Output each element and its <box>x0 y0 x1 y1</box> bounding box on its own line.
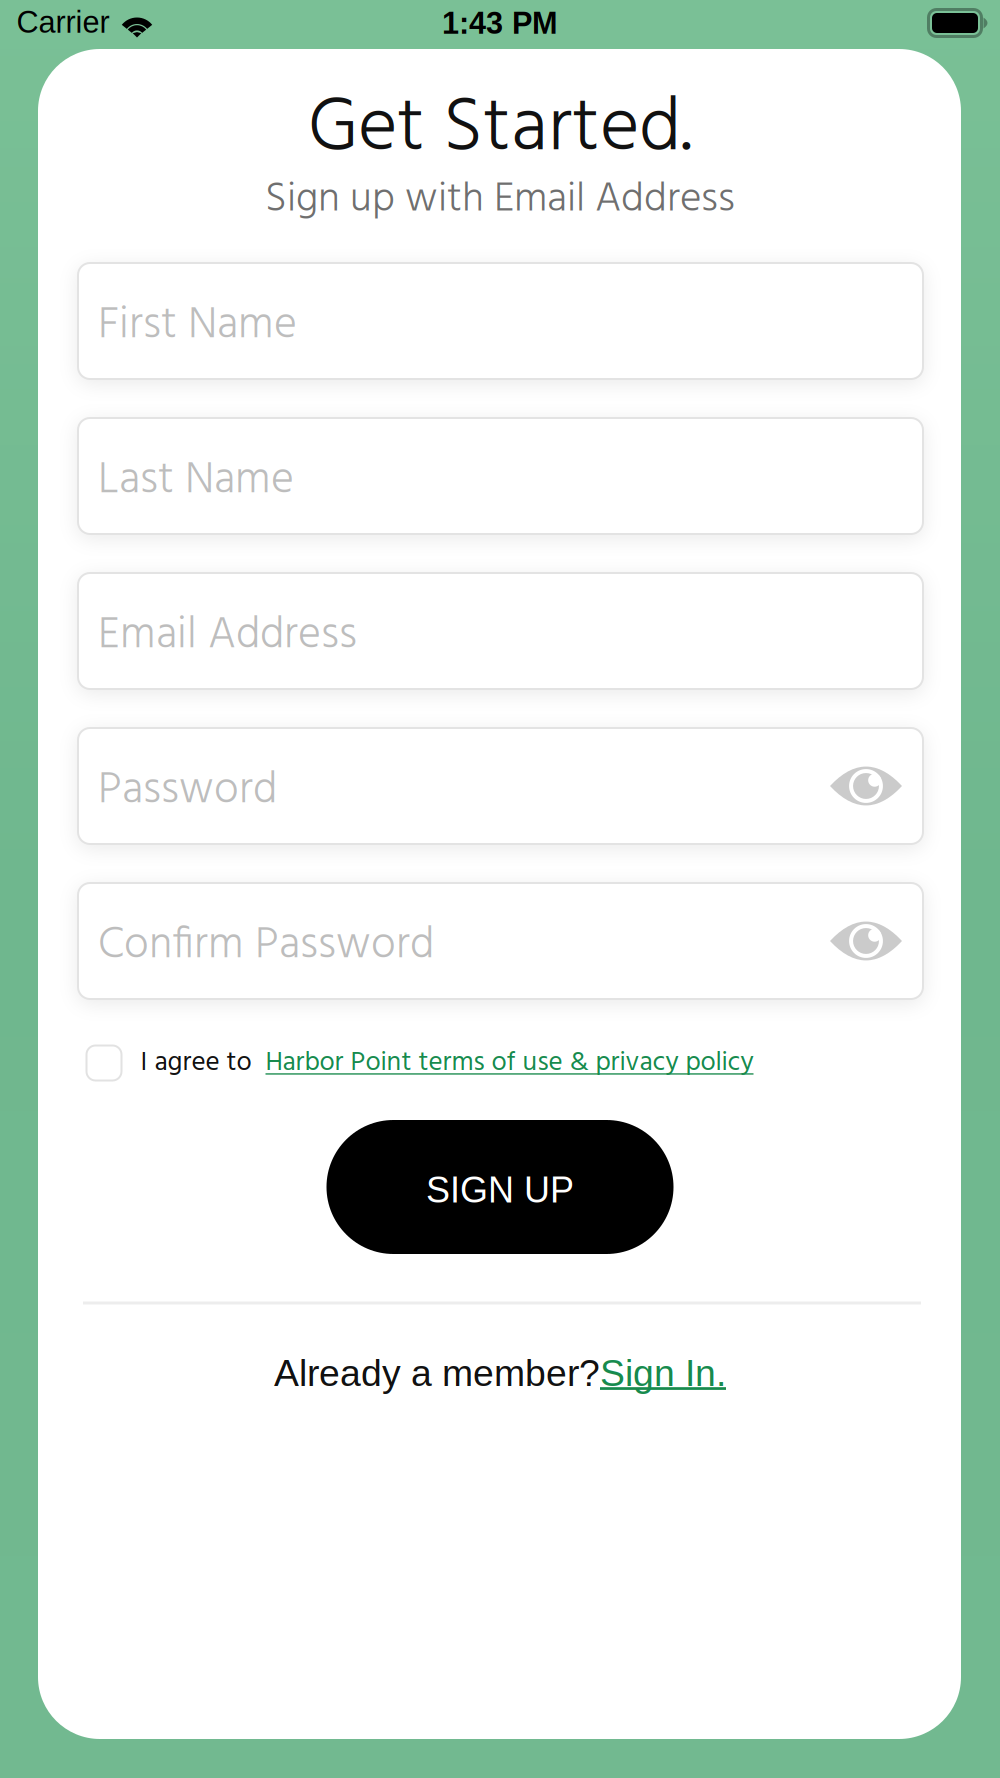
staticText: Sign up with Email Address <box>265 167 735 233</box>
staticText: SIGN UP <box>426 1170 574 1210</box>
staticText: Sign In. <box>600 1352 726 1394</box>
staticText: Harbor Point terms of use & privacy poli… <box>265 1041 753 1085</box>
button[interactable]: SIGN UP <box>326 1120 673 1254</box>
staticText: First Name <box>98 291 297 361</box>
staticText: 1:43 PM <box>442 6 558 40</box>
button[interactable]: Password <box>78 728 923 844</box>
button[interactable]: Email Address <box>78 573 923 689</box>
button[interactable]: Sign In. <box>600 1352 726 1394</box>
button[interactable]: Last Name <box>78 418 923 534</box>
button[interactable]: First Name <box>78 263 923 379</box>
staticText: Email Address <box>98 601 357 671</box>
staticText: Confirm Password <box>98 911 434 981</box>
staticText: Carrier <box>16 5 109 39</box>
button[interactable]: I agree to <box>77 1041 922 1085</box>
staticText: I agree to <box>140 1041 251 1085</box>
staticText: Last Name <box>98 446 294 516</box>
staticText: Password <box>98 756 277 826</box>
button[interactable]: Confirm Password <box>78 883 923 999</box>
staticText: Get Started. <box>308 69 692 191</box>
staticText: Already a member? <box>274 1352 600 1394</box>
